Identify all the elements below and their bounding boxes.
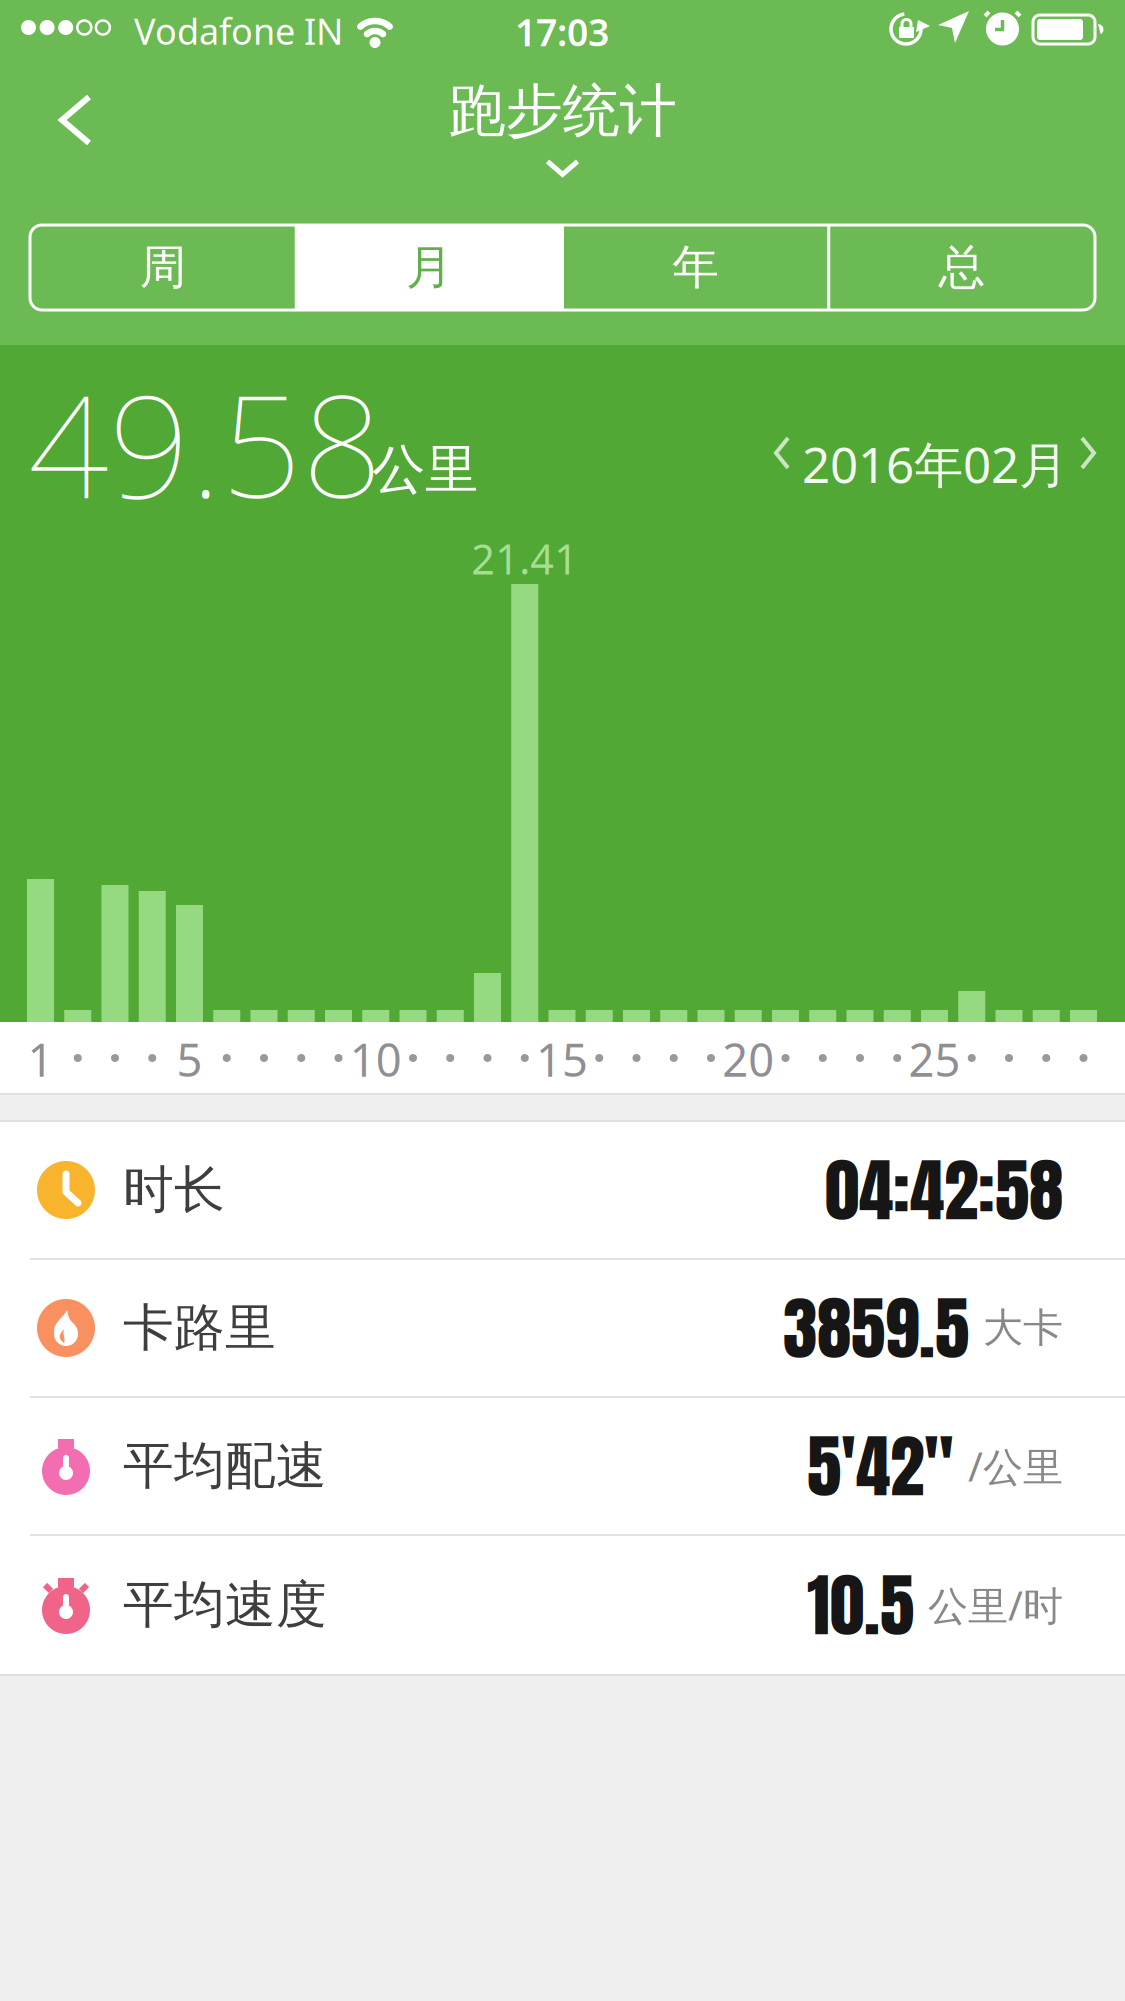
staticText: 大卡 (983, 1303, 1063, 1352)
staticText: 5'42" (807, 1414, 954, 1518)
staticText: 公里 (372, 437, 478, 502)
staticText: 跑步统计 (448, 76, 676, 146)
button[interactable]: Next month (1078, 434, 1098, 472)
staticText: Vodafone IN (134, 7, 343, 55)
staticText: 10.5 (807, 1553, 914, 1657)
staticText: 3859.5 (783, 1276, 969, 1380)
button[interactable]: 总 (829, 225, 1095, 310)
button[interactable]: 周 (30, 225, 296, 310)
staticText: 17:03 (515, 7, 609, 57)
staticText: 20 (722, 1029, 774, 1089)
staticText: 15 (536, 1029, 588, 1089)
staticText: 年 (672, 239, 719, 296)
staticText: 2016年02月 (802, 431, 1068, 496)
staticText: 卡路里 (123, 1297, 276, 1359)
staticText: 25 (908, 1029, 960, 1089)
staticText: 1 (27, 1029, 53, 1089)
button[interactable]: 跑步统计 (362, 76, 762, 177)
staticText: 平均配速 (123, 1435, 327, 1497)
staticText: 时长 (123, 1159, 225, 1221)
staticText: 总 (938, 239, 985, 296)
staticText: 04:42:58 (825, 1138, 1063, 1242)
staticText: 49.58 (28, 349, 383, 537)
button[interactable]: Previous month (772, 434, 792, 472)
staticText: 21.41 (471, 531, 578, 586)
button[interactable]: 月 (296, 225, 562, 310)
staticText: /公里 (968, 1439, 1063, 1492)
button[interactable]: Back (0, 76, 134, 166)
staticText: 公里/时 (928, 1578, 1063, 1631)
staticText: 平均速度 (123, 1574, 327, 1636)
staticText: 5 (176, 1029, 202, 1089)
staticText: 周 (140, 239, 187, 296)
staticText: 10 (350, 1029, 402, 1089)
staticText: 月 (406, 239, 453, 296)
button[interactable]: 年 (562, 225, 829, 310)
